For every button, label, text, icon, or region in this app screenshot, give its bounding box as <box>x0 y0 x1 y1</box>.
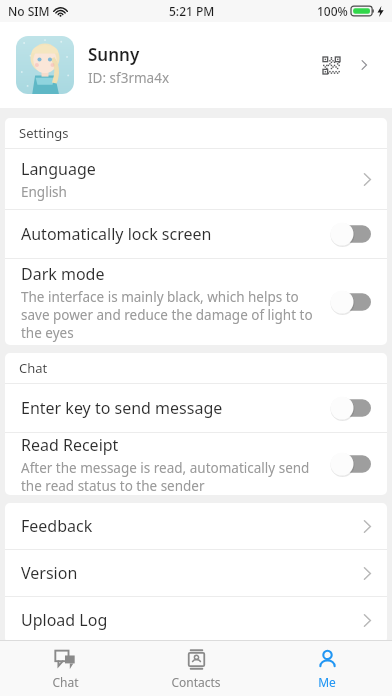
staticText: Settings <box>19 124 69 142</box>
staticText: 5:21 PM <box>169 3 215 19</box>
staticText: Chat <box>19 359 48 377</box>
button[interactable]: Toggle, off <box>330 290 371 314</box>
button[interactable]: Profile details <box>352 53 376 77</box>
staticText: Enter key to send message <box>21 397 223 419</box>
staticText: Language <box>21 158 96 180</box>
button[interactable]: Automatically lock screen <box>5 210 387 258</box>
button[interactable]: Sunny <box>0 22 392 108</box>
button[interactable]: Feedback <box>5 503 387 549</box>
staticText: Feedback <box>21 515 93 537</box>
button[interactable]: Enter key to send message <box>5 384 387 432</box>
staticText: Automatically lock screen <box>21 223 212 245</box>
button[interactable]: Toggle, off <box>330 452 371 476</box>
button[interactable]: Show QR code <box>316 50 346 80</box>
staticText: Sunny <box>88 43 140 66</box>
staticText: Read Receipt <box>21 434 119 456</box>
button[interactable]: Language <box>5 149 387 209</box>
staticText: ID: sf3rma4x <box>88 69 170 87</box>
staticText: 100% <box>317 3 348 19</box>
staticText: After the message is read, automatically… <box>21 459 316 495</box>
staticText: Upload Log <box>21 609 108 631</box>
button[interactable]: Toggle, off <box>330 222 371 246</box>
staticText: English <box>21 183 67 201</box>
button[interactable]: Toggle, off <box>330 396 371 420</box>
staticText: Me <box>318 674 336 690</box>
staticText: Contacts <box>171 674 221 690</box>
staticText: Chat <box>52 674 79 690</box>
button[interactable]: Chat <box>0 641 130 696</box>
staticText: No SIM <box>8 3 50 19</box>
staticText: Dark mode <box>21 263 105 285</box>
staticText: The interface is mainly black, which hel… <box>21 288 316 342</box>
button[interactable]: Version <box>5 550 387 596</box>
button[interactable]: Contacts <box>130 641 261 696</box>
button[interactable]: Me <box>261 641 392 696</box>
button[interactable]: Upload Log <box>5 597 387 643</box>
button[interactable]: Dark mode <box>5 259 387 345</box>
button[interactable]: Read Receipt <box>5 433 387 495</box>
staticText: Version <box>21 562 78 584</box>
